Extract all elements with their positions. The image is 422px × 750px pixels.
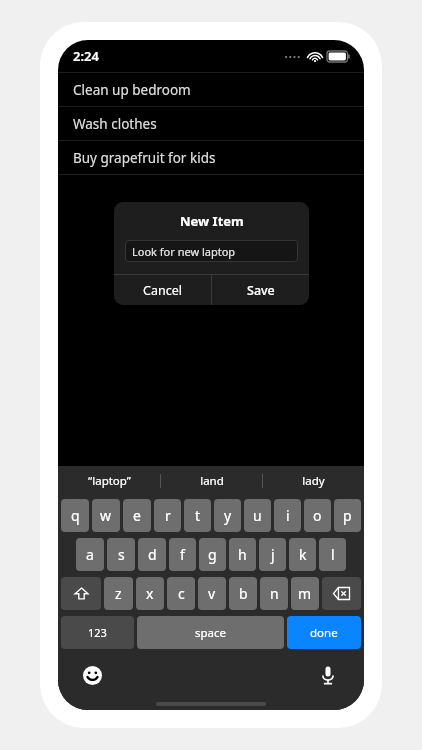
button[interactable]: x: [136, 577, 164, 610]
staticText: Cancel: [143, 282, 182, 299]
button[interactable]: d: [138, 538, 166, 571]
staticText: Look for new laptop: [132, 244, 236, 259]
button[interactable]: Cancel: [114, 275, 211, 305]
staticText: land: [200, 473, 224, 489]
button[interactable]: v: [198, 577, 226, 610]
staticText: Clean up bedroom: [73, 81, 191, 99]
button[interactable]: Save: [212, 275, 309, 305]
button[interactable]: m: [291, 577, 319, 610]
staticText: New Item: [180, 212, 244, 230]
button[interactable]: lady: [263, 466, 364, 496]
staticText: i: [286, 506, 290, 525]
staticText: y: [224, 506, 232, 525]
staticText: x: [146, 584, 154, 603]
button[interactable]: land: [161, 466, 262, 496]
staticText: b: [239, 584, 248, 603]
staticText: t: [195, 506, 201, 525]
button[interactable]: space: [137, 616, 284, 649]
staticText: 123: [88, 625, 107, 640]
staticText: q: [71, 506, 80, 525]
staticText: r: [165, 506, 171, 525]
button[interactable]: w: [92, 499, 120, 532]
button[interactable]: y: [214, 499, 241, 532]
staticText: p: [343, 506, 352, 525]
button[interactable]: g: [199, 538, 226, 571]
staticText: e: [133, 506, 141, 525]
staticText: c: [178, 584, 185, 603]
staticText: u: [253, 506, 262, 525]
button[interactable]: b: [229, 577, 257, 610]
button[interactable]: c: [167, 577, 195, 610]
button[interactable]: l: [319, 538, 346, 571]
button[interactable]: j: [259, 538, 286, 571]
staticText: o: [313, 506, 322, 525]
staticText: Buy grapefruit for kids: [73, 149, 216, 167]
staticText: d: [148, 545, 157, 564]
button[interactable]: u: [244, 499, 271, 532]
button[interactable]: done: [287, 616, 361, 649]
staticText: 2:24: [73, 47, 99, 65]
button[interactable]: p: [334, 499, 361, 532]
staticText: “laptop”: [88, 473, 131, 489]
staticText: j: [271, 545, 275, 564]
button[interactable]: Wash clothes: [58, 106, 364, 140]
staticText: f: [180, 545, 185, 564]
staticText: Wash clothes: [73, 115, 157, 133]
staticText: h: [238, 545, 247, 564]
button[interactable]: a: [76, 538, 104, 571]
button[interactable]: n: [260, 577, 288, 610]
button[interactable]: Emoji keyboard: [80, 663, 104, 687]
button[interactable]: 123: [61, 616, 134, 649]
staticText: space: [195, 625, 227, 641]
button[interactable]: “laptop”: [58, 466, 160, 496]
staticText: s: [118, 545, 125, 564]
button[interactable]: o: [304, 499, 331, 532]
button[interactable]: Key: [322, 577, 361, 610]
button[interactable]: z: [104, 577, 133, 610]
button[interactable]: k: [289, 538, 316, 571]
staticText: n: [270, 584, 279, 603]
staticText: lady: [302, 473, 325, 489]
button[interactable]: s: [107, 538, 135, 571]
staticText: k: [299, 545, 307, 564]
button[interactable]: Buy grapefruit for kids: [58, 140, 364, 174]
button[interactable]: r: [154, 499, 181, 532]
button[interactable]: e: [123, 499, 151, 532]
button[interactable]: t: [184, 499, 211, 532]
button[interactable]: Look for new laptop: [125, 240, 298, 262]
button[interactable]: i: [274, 499, 301, 532]
button[interactable]: f: [169, 538, 196, 571]
staticText: m: [298, 584, 312, 603]
staticText: v: [208, 584, 216, 603]
staticText: w: [100, 506, 112, 525]
staticText: done: [310, 625, 338, 641]
staticText: Save: [247, 282, 275, 299]
button[interactable]: h: [229, 538, 256, 571]
staticText: l: [331, 545, 335, 564]
staticText: z: [115, 584, 122, 603]
button[interactable]: Clean up bedroom: [58, 72, 364, 106]
staticText: a: [86, 545, 94, 564]
button[interactable]: q: [61, 499, 89, 532]
button[interactable]: Voice input: [316, 663, 340, 687]
button[interactable]: Key: [61, 577, 101, 610]
staticText: g: [208, 545, 217, 564]
